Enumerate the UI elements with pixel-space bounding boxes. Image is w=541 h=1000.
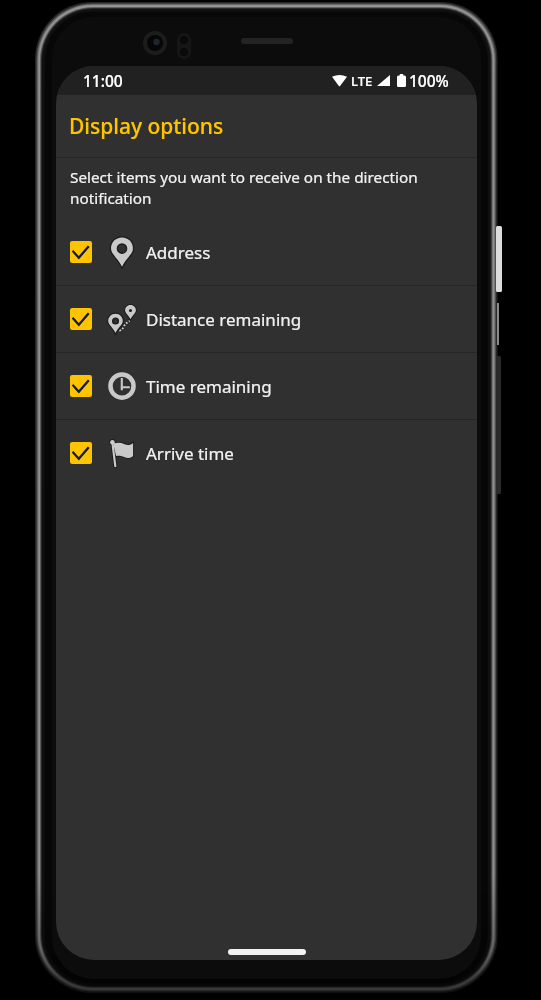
staticText: 100%: [409, 70, 449, 91]
button[interactable]: Distance remaining: [56, 286, 477, 352]
button[interactable]: Time remaining: [56, 353, 477, 419]
staticText: Arrive time: [146, 442, 234, 465]
button[interactable]: Arrive time: [56, 420, 477, 486]
staticText: Address: [146, 241, 211, 264]
staticText: Select items you want to receive on the …: [70, 167, 455, 209]
staticText: Distance remaining: [146, 308, 302, 331]
staticText: 11:00: [83, 70, 123, 91]
button[interactable]: Address: [56, 219, 477, 285]
staticText: Time remaining: [146, 375, 272, 398]
staticText: LTE: [351, 72, 373, 90]
staticText: Display options: [69, 112, 224, 141]
